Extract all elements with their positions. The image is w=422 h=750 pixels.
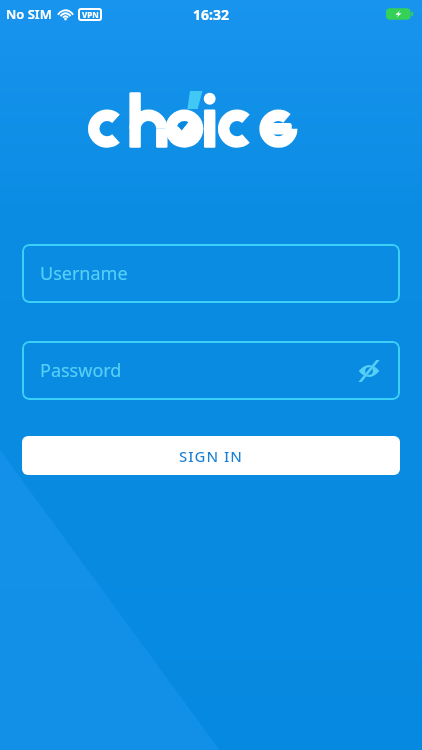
button[interactable]: Show password bbox=[354, 356, 384, 386]
staticText: SIGN IN bbox=[179, 446, 243, 466]
button[interactable]: SIGN IN bbox=[22, 436, 400, 475]
button[interactable]: Password bbox=[22, 341, 400, 400]
button[interactable]: Username bbox=[22, 244, 400, 303]
staticText: VPN bbox=[82, 9, 99, 20]
staticText: 16:32 bbox=[193, 5, 229, 24]
staticText: Username bbox=[40, 261, 128, 286]
staticText: No SIM bbox=[6, 5, 52, 23]
staticText: Password bbox=[40, 358, 122, 383]
